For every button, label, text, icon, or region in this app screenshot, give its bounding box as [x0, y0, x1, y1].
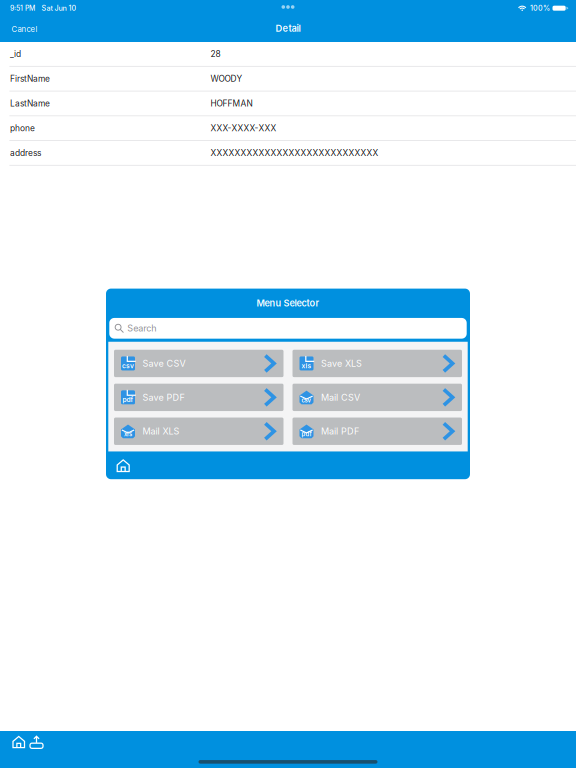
staticText: Mail PDF	[321, 426, 359, 437]
staticText: Save PDF	[142, 392, 184, 403]
button[interactable]: Home	[106, 451, 138, 479]
button[interactable]: Export	[30, 735, 49, 748]
staticText: Mail XLS	[142, 426, 179, 437]
button[interactable]: pdf	[292, 418, 462, 445]
staticText: address	[10, 148, 41, 158]
staticText: 28	[210, 49, 220, 59]
staticText: Cancel	[12, 24, 38, 34]
button[interactable]: Home	[0, 736, 30, 748]
staticText: pdf	[122, 395, 133, 404]
staticText: XXX-XXXX-XXX	[210, 123, 276, 133]
staticText: WOODY	[210, 74, 242, 84]
button[interactable]: Cancel	[0, 15, 46, 42]
button[interactable]: xls	[114, 418, 283, 445]
staticText: csv	[122, 362, 134, 370]
staticText: Mail CSV	[321, 392, 360, 403]
staticText: 9:51 PM	[10, 4, 35, 12]
staticText: _id	[10, 49, 21, 59]
staticText: pdf	[301, 430, 311, 438]
staticText: LastName	[10, 98, 50, 109]
staticText: Detail	[275, 23, 300, 34]
staticText: FirstName	[10, 74, 50, 84]
staticText: Search	[127, 323, 156, 334]
staticText: Save CSV	[142, 358, 185, 369]
staticText: xls	[301, 362, 311, 370]
button[interactable]: csv	[292, 384, 462, 411]
staticText: csv	[301, 397, 311, 404]
staticText: 100%	[530, 4, 550, 12]
staticText: Sat Jun 10	[41, 4, 76, 12]
staticText: phone	[10, 123, 35, 133]
staticText: Menu Selector	[256, 297, 319, 309]
staticText: Save XLS	[321, 358, 362, 369]
button[interactable]: xls	[292, 350, 462, 377]
button[interactable]: csv	[114, 350, 283, 377]
button[interactable]: pdf	[114, 384, 283, 411]
staticText: HOFFMAN	[210, 98, 252, 109]
staticText: xls	[124, 430, 132, 438]
staticText: XXXXXXXXXXXXXXXXXXXXXXXXXXXX	[210, 148, 378, 158]
